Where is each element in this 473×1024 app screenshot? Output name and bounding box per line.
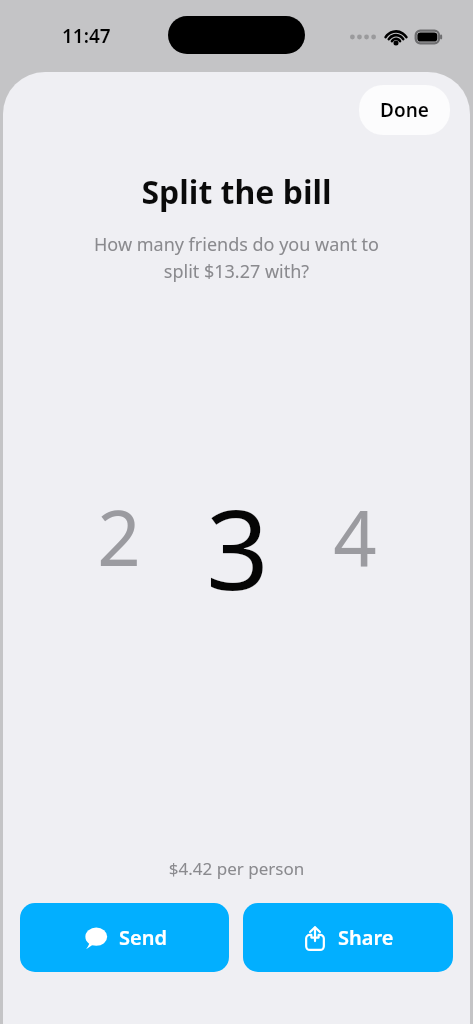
staticText: Done — [380, 97, 429, 123]
staticText: 3 — [206, 472, 269, 602]
staticText: 2 — [97, 485, 141, 589]
button[interactable]: Share — [243, 903, 453, 972]
staticText: 11:47 — [62, 23, 111, 49]
button[interactable]: 4 — [296, 477, 414, 597]
button[interactable]: 3 — [178, 472, 296, 602]
staticText: $4.42 per person — [3, 857, 470, 880]
staticText: 4 — [333, 485, 377, 589]
staticText: How many friends do you want to split $1… — [43, 232, 430, 283]
staticText: Send — [119, 924, 167, 951]
button[interactable]: Send — [20, 903, 229, 972]
staticText: Share — [338, 924, 394, 951]
button[interactable]: Done — [359, 85, 450, 135]
button[interactable]: 2 — [60, 477, 178, 597]
staticText: Split the bill — [3, 170, 470, 214]
